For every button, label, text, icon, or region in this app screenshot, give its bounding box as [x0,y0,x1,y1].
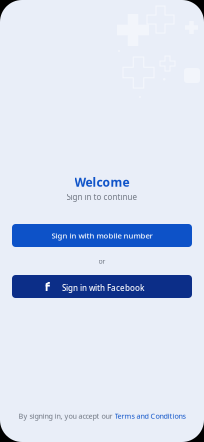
staticText: By signing in, you accept our [18,411,114,421]
button[interactable]: Sign in with Facebook [12,275,192,298]
staticText: Sign in to continue [66,192,137,202]
staticText: Sign in with Facebook [62,282,144,293]
staticText: or [98,256,105,266]
button[interactable]: Sign in with mobile number [12,224,192,247]
staticText: Sign in with mobile number [51,230,152,241]
button[interactable]: Terms and Conditions [114,411,185,421]
staticText: Welcome [74,174,129,190]
staticText: Terms and Conditions [114,411,185,421]
